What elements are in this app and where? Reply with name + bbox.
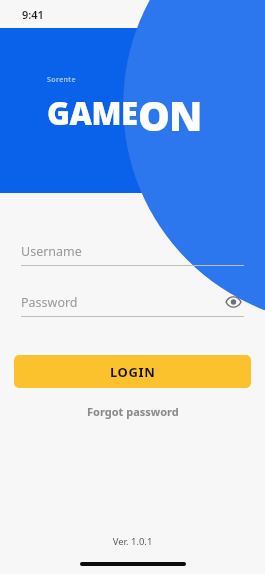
staticText: GAME — [47, 92, 138, 134]
button[interactable]: Password — [21, 288, 244, 317]
button[interactable]: Forgot password — [0, 404, 265, 419]
button[interactable]: LOGIN — [14, 355, 251, 388]
staticText: ON — [138, 88, 202, 142]
button[interactable]: Show password — [222, 291, 244, 313]
staticText: Ver. 1.0.1 — [0, 535, 265, 548]
staticText: Username — [21, 243, 82, 260]
staticText: LOGIN — [110, 363, 156, 381]
button[interactable]: Username — [21, 237, 244, 266]
staticText: Forgot password — [87, 404, 179, 419]
staticText: Sorente — [47, 75, 76, 85]
staticText: 9:41 — [22, 7, 44, 22]
staticText: Password — [21, 294, 78, 311]
